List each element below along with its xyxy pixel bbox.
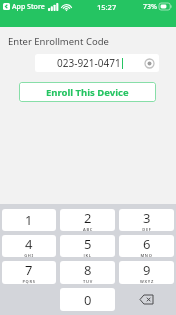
staticText: Enter Enrollment Code <box>8 35 109 48</box>
button[interactable]: 4 <box>2 235 56 257</box>
staticText: ABC <box>83 227 93 231</box>
staticText: 73% <box>143 2 157 12</box>
button[interactable]: Clear text <box>145 59 154 68</box>
staticText: JKL <box>83 253 92 257</box>
staticText: Enroll This Device <box>46 86 129 99</box>
staticText: 0 <box>84 291 92 309</box>
staticText: 3 <box>143 209 151 227</box>
staticText: 6 <box>143 235 151 253</box>
staticText: 2 <box>84 209 92 227</box>
staticText: 7 <box>25 261 33 279</box>
button[interactable]: 023-921-0471 <box>35 54 159 72</box>
staticText: 4 <box>25 235 33 253</box>
staticText: App Store <box>12 2 45 12</box>
button[interactable]: 9 <box>119 261 174 284</box>
button[interactable]: 6 <box>119 235 174 257</box>
staticText: GHI <box>24 253 34 257</box>
staticText: DEF <box>142 227 152 231</box>
staticText: 15:27 <box>97 2 117 12</box>
button[interactable]: Delete <box>119 288 174 311</box>
staticText: TUV <box>83 279 93 284</box>
button[interactable]: 2 <box>60 209 115 231</box>
button[interactable]: 5 <box>60 235 115 257</box>
staticText: 023-921-0471 <box>57 56 121 70</box>
button[interactable]: Enroll This Device <box>19 82 156 102</box>
staticText: WXYZ <box>140 279 154 284</box>
button[interactable]: 8 <box>60 261 115 284</box>
staticText: 1 <box>25 211 33 229</box>
button[interactable]: 7 <box>2 261 56 284</box>
staticText: MNO <box>140 253 153 257</box>
button[interactable]: 3 <box>119 209 174 231</box>
staticText: PQRS <box>22 279 36 284</box>
staticText: 9 <box>143 261 151 279</box>
button[interactable]: 0 <box>60 288 115 311</box>
button[interactable]: 1 <box>2 209 56 231</box>
staticText: 5 <box>84 235 92 253</box>
staticText: 8 <box>84 261 92 279</box>
